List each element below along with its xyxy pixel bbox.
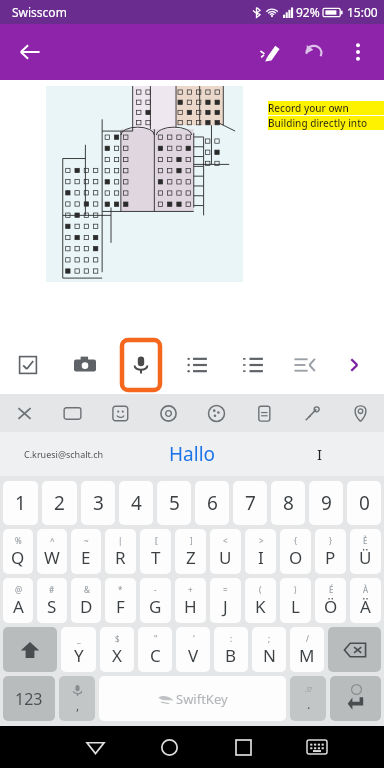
staticText: ,: [76, 697, 80, 713]
staticText: /: [306, 633, 309, 644]
staticText: {: [294, 535, 298, 546]
button[interactable]: .!?: [290, 676, 326, 721]
staticText: E: [81, 546, 91, 569]
button[interactable]: >: [245, 529, 276, 574]
button[interactable]: {: [280, 529, 311, 574]
staticText: >: [259, 535, 264, 546]
staticText: ;: [268, 633, 271, 644]
button[interactable]: À: [350, 578, 381, 623]
button[interactable]: Themes: [192, 394, 240, 432]
button[interactable]: Voice input: [59, 676, 95, 721]
button[interactable]: È: [350, 529, 381, 574]
staticText: .: [307, 695, 311, 713]
button[interactable]: Shift: [3, 627, 57, 672]
button[interactable]: GIF: [48, 394, 96, 432]
button[interactable]: 123: [3, 676, 55, 721]
button[interactable]: 9: [309, 481, 343, 525]
staticText: :: [230, 633, 233, 644]
staticText: 4: [131, 490, 142, 516]
staticText: 1: [15, 490, 26, 516]
button[interactable]: Enter: [330, 676, 381, 721]
staticText: Ö: [324, 595, 338, 618]
button[interactable]: @: [3, 578, 33, 623]
button[interactable]: +: [175, 578, 206, 623]
button[interactable]: (: [245, 578, 276, 623]
staticText: Building directly into this C: [268, 116, 384, 130]
button[interactable]: I: [256, 432, 384, 476]
button[interactable]: Back: [58, 726, 132, 768]
staticText: |: [118, 535, 123, 546]
button[interactable]: Clipboard: [240, 394, 288, 432]
staticText: 15:00: [347, 4, 378, 20]
staticText: R: [115, 546, 126, 569]
button[interactable]: Close: [0, 394, 48, 432]
button[interactable]: 8: [271, 481, 305, 525]
staticText: ': [193, 633, 195, 644]
staticText: C.kruesi@schalt.ch: [24, 448, 104, 460]
button[interactable]: Bulleted list: [179, 347, 215, 383]
button[interactable]: C.kruesi@schalt.ch: [0, 432, 128, 476]
button[interactable]: 4: [119, 481, 153, 525]
button[interactable]: Settings: [144, 394, 192, 432]
button[interactable]: Back: [8, 30, 52, 74]
button[interactable]: $: [100, 627, 134, 672]
button[interactable]: Home: [132, 726, 206, 768]
staticText: %: [15, 535, 22, 546]
button[interactable]: Recents: [206, 726, 280, 768]
button[interactable]: É: [315, 578, 346, 623]
staticText: ": [154, 633, 158, 644]
staticText: 7: [245, 490, 256, 516]
staticText: M: [299, 644, 315, 667]
button[interactable]: Stickers: [96, 394, 144, 432]
button[interactable]: :: [214, 627, 248, 672]
button[interactable]: -: [140, 578, 171, 623]
button[interactable]: =: [210, 578, 241, 623]
button[interactable]: Undo: [292, 30, 336, 74]
staticText: D: [80, 595, 93, 618]
button[interactable]: 7: [233, 481, 267, 525]
button[interactable]: Hide keyboard: [280, 726, 354, 768]
button[interactable]: Space: [99, 676, 286, 721]
staticText: =: [223, 584, 228, 595]
button[interactable]: Pin: [288, 394, 336, 432]
button[interactable]: 6: [195, 481, 229, 525]
button[interactable]: More formatting: [324, 343, 384, 387]
button[interactable]: [: [140, 529, 171, 574]
button[interactable]: *: [105, 578, 136, 623]
button[interactable]: 0: [347, 481, 381, 525]
button[interactable]: Voice recording: [122, 340, 160, 390]
staticText: U: [219, 546, 232, 569]
button[interactable]: ': [176, 627, 210, 672]
button[interactable]: ~: [71, 529, 101, 574]
button[interactable]: }: [315, 529, 346, 574]
button[interactable]: 2: [42, 481, 77, 525]
button[interactable]: ": [138, 627, 172, 672]
button[interactable]: Checklist: [10, 347, 46, 383]
staticText: *: [118, 584, 123, 595]
button[interactable]: 3: [81, 481, 115, 525]
button[interactable]: ^: [37, 529, 67, 574]
button[interactable]: /: [290, 627, 324, 672]
button[interactable]: Camera: [67, 347, 103, 383]
button[interactable]: Location: [336, 394, 384, 432]
button[interactable]: ;: [252, 627, 286, 672]
button[interactable]: Numbered list: [235, 347, 271, 383]
button[interactable]: #: [37, 578, 67, 623]
staticText: $: [115, 633, 120, 644]
button[interactable]: More options: [336, 30, 380, 74]
staticText: 3: [93, 490, 104, 516]
button[interactable]: &: [71, 578, 101, 623]
button[interactable]: ]: [175, 529, 206, 574]
button[interactable]: %: [3, 529, 33, 574]
button[interactable]: Backspace: [328, 627, 381, 672]
button[interactable]: _: [61, 627, 96, 672]
button[interactable]: 1: [3, 481, 38, 525]
button[interactable]: Decrease indent: [287, 347, 323, 383]
button[interactable]: ): [280, 578, 311, 623]
button[interactable]: Highlight pen: [248, 30, 292, 74]
staticText: &: [84, 584, 90, 595]
button[interactable]: Hallo: [128, 432, 256, 476]
button[interactable]: |: [105, 529, 136, 574]
button[interactable]: 5: [157, 481, 191, 525]
button[interactable]: <: [210, 529, 241, 574]
